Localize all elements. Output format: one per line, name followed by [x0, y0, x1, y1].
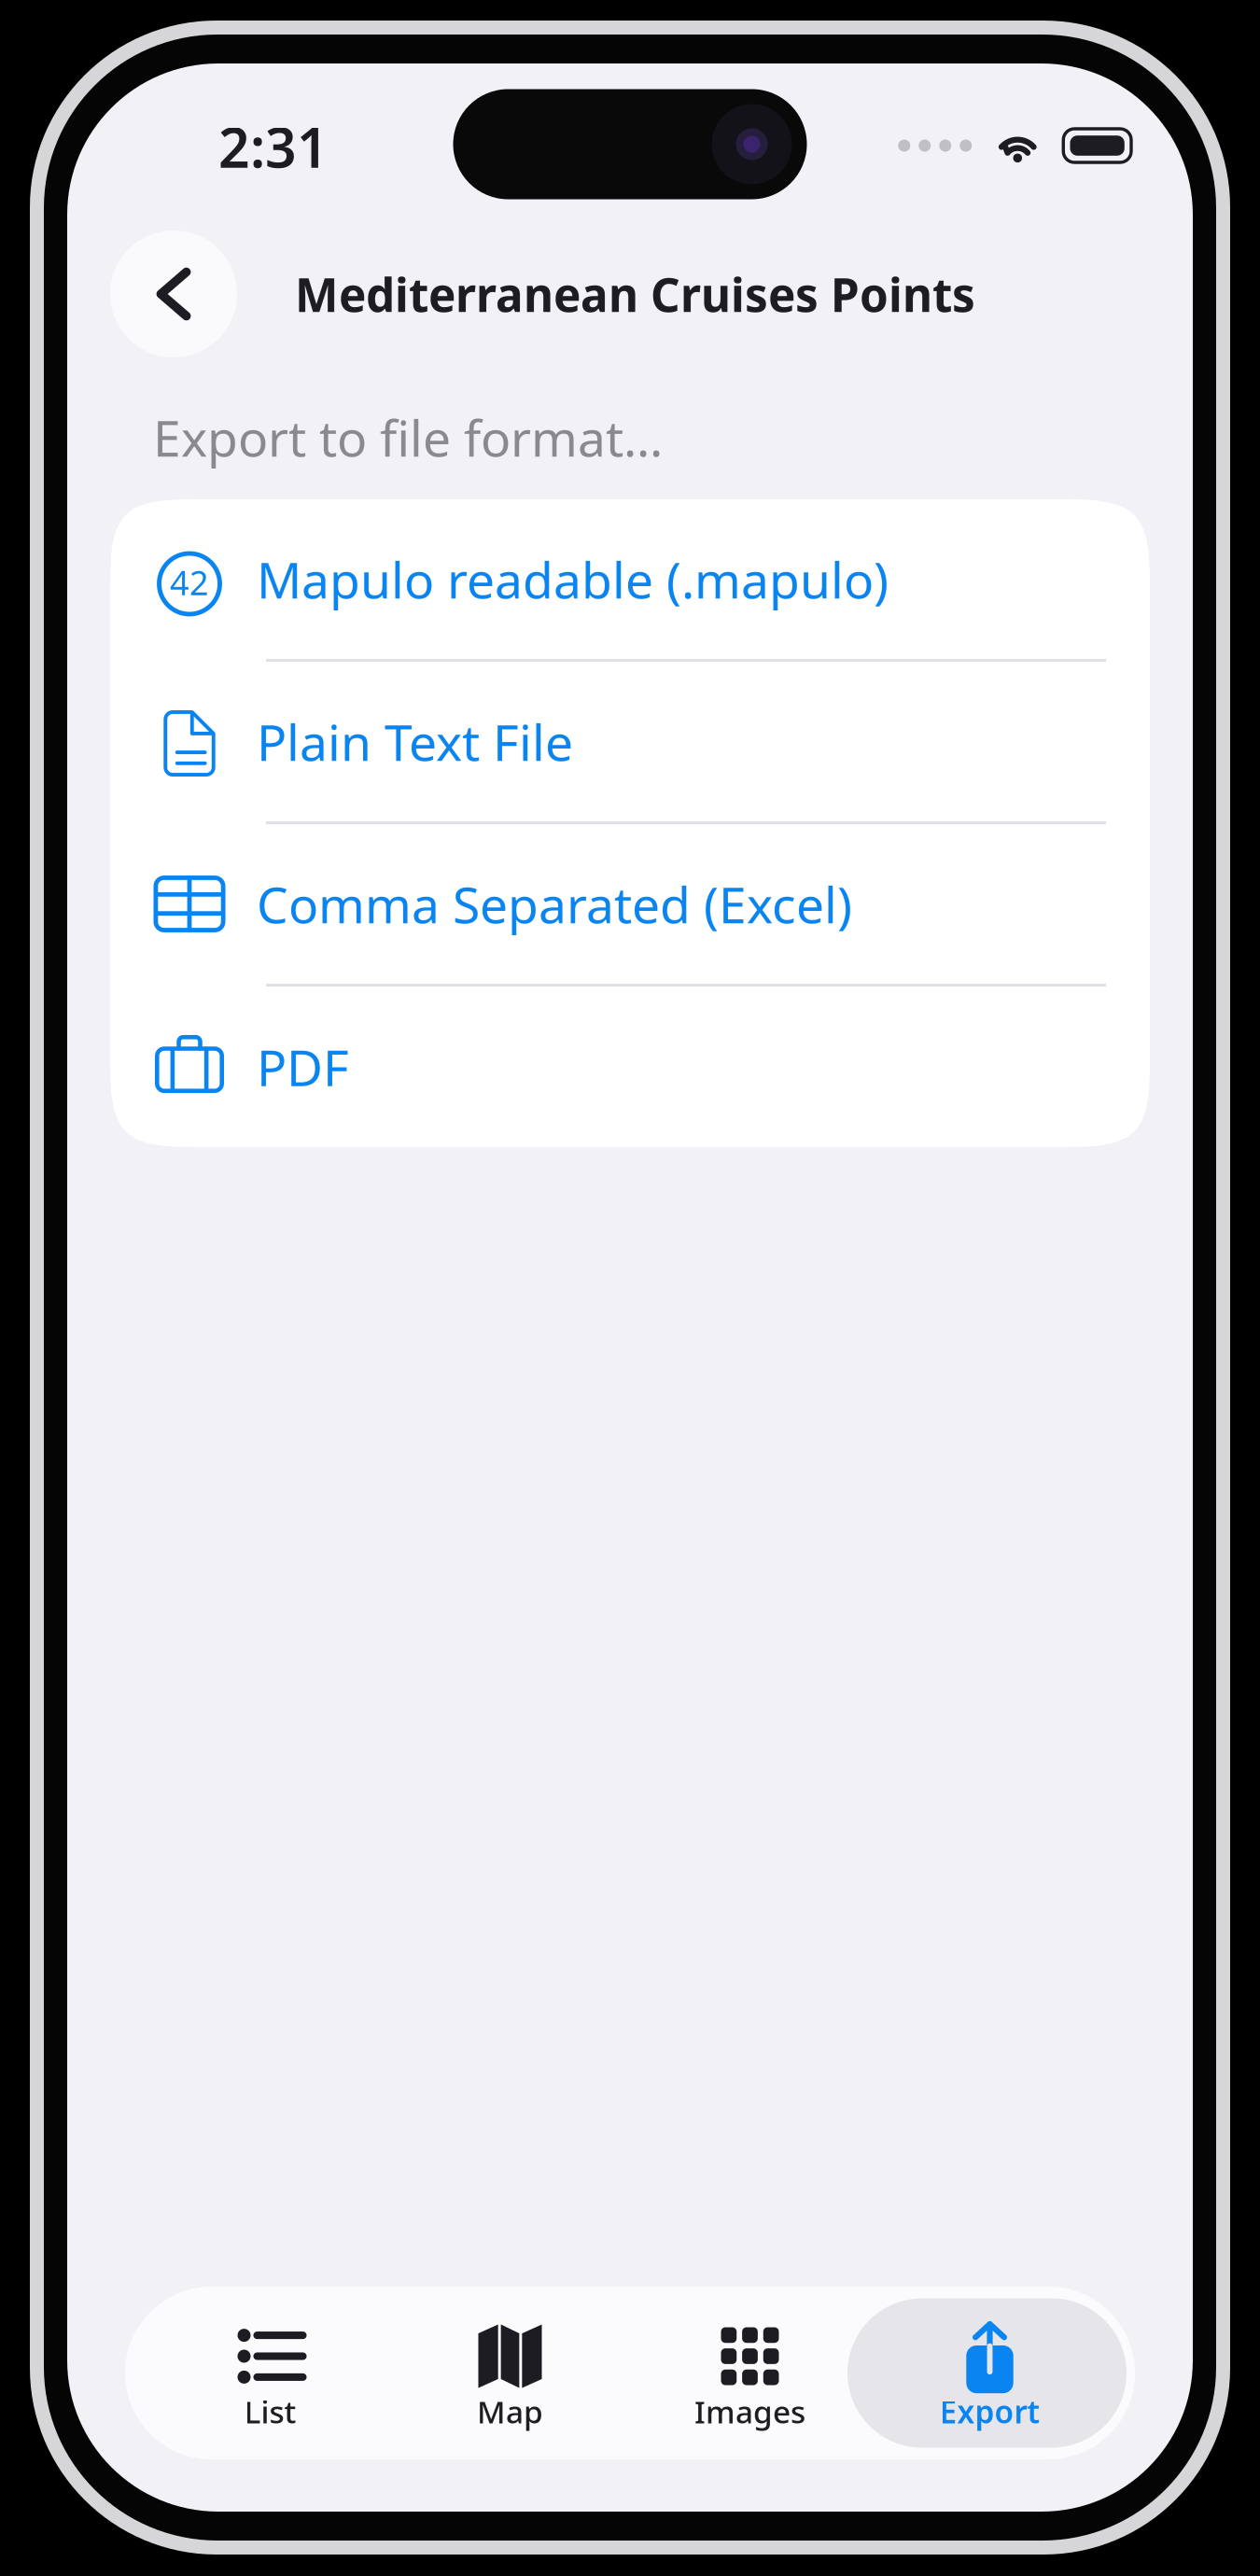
staticText: Images — [694, 2391, 805, 2432]
staticText: Map — [477, 2391, 543, 2432]
staticText: Comma Separated (Excel) — [257, 871, 852, 937]
staticText: Plain Text File — [257, 708, 573, 775]
staticText: Export — [939, 2391, 1040, 2432]
staticText: Mediterranean Cruises Points — [295, 263, 975, 325]
staticText: Export to file format... — [153, 404, 663, 470]
button[interactable]: 42 — [110, 499, 1150, 662]
staticText: PDF — [257, 1034, 349, 1100]
button[interactable]: Images — [630, 2298, 870, 2448]
button[interactable]: Comma Separated (Excel) — [110, 824, 1150, 987]
button[interactable]: Back — [110, 231, 237, 357]
staticText: List — [244, 2391, 296, 2432]
staticText: Mapulo readable (.mapulo) — [257, 546, 889, 612]
button[interactable]: Export — [870, 2298, 1110, 2448]
button[interactable]: Map — [390, 2298, 630, 2448]
button[interactable]: List — [150, 2298, 390, 2448]
button[interactable]: Plain Text File — [110, 662, 1150, 824]
staticText: 2:31 — [218, 110, 329, 183]
staticText: 42 — [170, 560, 209, 605]
button[interactable]: PDF — [110, 987, 1150, 1147]
